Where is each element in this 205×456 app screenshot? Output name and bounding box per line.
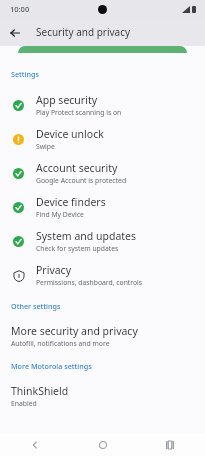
staticText: Settings (11, 69, 39, 79)
staticText: Check for system updates (36, 244, 119, 253)
staticText: Autofill, notifications and more (11, 339, 110, 348)
staticText: Account security (36, 161, 118, 175)
staticText: ThinkShield (11, 384, 69, 398)
button[interactable]: Back (24, 434, 46, 456)
staticText: More security and privacy (11, 324, 138, 338)
staticText: Privacy (36, 263, 72, 277)
button[interactable]: Device unlock (0, 122, 205, 156)
staticText: Enabled (11, 399, 37, 408)
staticText: App security (36, 93, 98, 107)
staticText: Other settings (11, 301, 61, 311)
button[interactable]: Back (6, 24, 23, 41)
staticText: System and updates (36, 229, 137, 243)
button[interactable]: Home (92, 434, 114, 456)
button[interactable]: Device finders (0, 190, 205, 224)
button[interactable]: More security and privacy (0, 319, 205, 353)
button[interactable]: Recent apps (159, 434, 181, 456)
staticText: Permissions, dashboard, controls (36, 278, 143, 287)
staticText: Device finders (36, 195, 106, 209)
button[interactable]: App security (0, 88, 205, 122)
button[interactable] (18, 46, 187, 53)
staticText: Security and privacy (36, 25, 131, 39)
staticText: Google Account is protected (36, 176, 127, 185)
staticText: Find My Device (36, 210, 84, 219)
button[interactable]: Account security (0, 156, 205, 190)
button[interactable]: System and updates (0, 224, 205, 258)
button[interactable]: ThinkShield (0, 379, 205, 413)
staticText: More Motorola settings (11, 361, 92, 371)
staticText: Swipe (36, 142, 55, 151)
button[interactable]: Privacy (0, 258, 205, 292)
staticText: Play Protect scanning is on (36, 108, 122, 117)
staticText: Device unlock (36, 127, 104, 141)
staticText: 10:00 (10, 4, 30, 14)
